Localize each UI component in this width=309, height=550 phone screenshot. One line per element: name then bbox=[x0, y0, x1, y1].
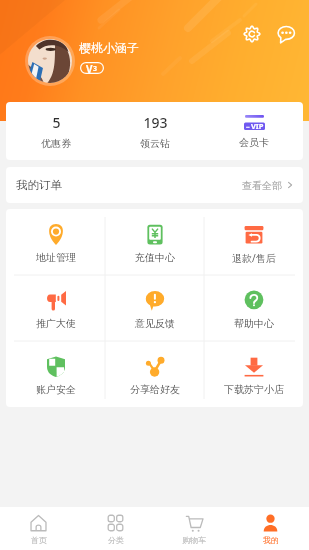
staticText: 地址管理 bbox=[36, 251, 76, 264]
staticText: 5 bbox=[52, 113, 61, 132]
button[interactable]: Settings bbox=[243, 25, 261, 43]
staticText: 樱桃小涵子 bbox=[79, 40, 139, 55]
button[interactable]: 意见反馈 bbox=[105, 275, 204, 341]
staticText: 查看全部 bbox=[242, 179, 282, 192]
staticText: 分享给好友 bbox=[130, 383, 180, 396]
button[interactable]: 我的 bbox=[232, 507, 309, 550]
button[interactable]: 首页 bbox=[0, 507, 77, 550]
button[interactable]: 我的订单 bbox=[6, 167, 303, 203]
button[interactable]: 退款/售后 bbox=[204, 209, 303, 275]
staticText: VIP bbox=[251, 121, 264, 131]
staticText: 193 bbox=[143, 113, 168, 132]
button[interactable]: 193 bbox=[105, 102, 204, 160]
button[interactable]: 分类 bbox=[77, 507, 154, 550]
staticText: 会员卡 bbox=[239, 136, 269, 149]
button[interactable]: 充值中心 bbox=[105, 209, 204, 275]
staticText: 账户安全 bbox=[36, 383, 76, 396]
staticText: V bbox=[86, 62, 93, 74]
staticText: 意见反馈 bbox=[135, 317, 175, 330]
staticText: 领云钻 bbox=[140, 137, 170, 150]
button[interactable]: Messages bbox=[277, 25, 295, 43]
staticText: 退款/售后 bbox=[232, 251, 276, 265]
staticText: 首页 bbox=[31, 535, 47, 545]
staticText: 充值中心 bbox=[135, 251, 175, 264]
button[interactable]: 帮助中心 bbox=[204, 275, 303, 341]
staticText: 优惠券 bbox=[41, 137, 71, 150]
button[interactable]: 地址管理 bbox=[6, 209, 105, 275]
button[interactable]: 分享给好友 bbox=[105, 341, 204, 407]
staticText: 推广大使 bbox=[36, 317, 76, 330]
button[interactable]: 5 bbox=[6, 102, 105, 160]
staticText: 我的订单 bbox=[16, 178, 62, 192]
staticText: 我的 bbox=[263, 535, 279, 545]
button[interactable]: 推广大使 bbox=[6, 275, 105, 341]
staticText: 帮助中心 bbox=[234, 317, 274, 330]
button[interactable]: VIP bbox=[204, 102, 303, 160]
staticText: 3 bbox=[93, 64, 98, 74]
staticText: 分类 bbox=[108, 535, 124, 545]
button[interactable]: 购物车 bbox=[155, 507, 232, 550]
staticText: 下载苏宁小店 bbox=[224, 383, 284, 396]
staticText: 购物车 bbox=[182, 535, 206, 545]
button[interactable]: 账户安全 bbox=[6, 341, 105, 407]
button[interactable]: 下载苏宁小店 bbox=[204, 341, 303, 407]
